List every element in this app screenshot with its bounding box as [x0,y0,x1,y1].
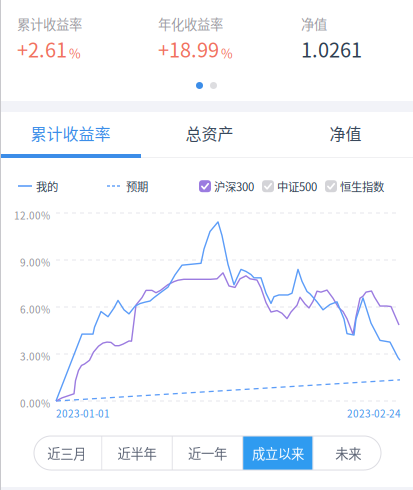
staticText: 累计收益率 [17,14,82,33]
staticText: 2023-02-24 [347,406,401,420]
staticText: 6.00% [20,302,50,316]
staticText: 累计收益率 [30,121,110,145]
button[interactable]: 成立以来 [243,436,313,470]
staticText: 成立以来 [252,443,304,463]
staticText: 预期 [126,178,148,194]
staticText: 3.00% [20,349,50,363]
staticText: 总资产 [185,121,233,145]
button[interactable]: 中证500 [262,178,317,194]
staticText: 沪深300 [214,178,254,194]
staticText: 净值 [329,121,361,145]
staticText: % [69,44,81,62]
button[interactable]: 近半年 [102,436,172,470]
staticText: 近半年 [118,443,157,463]
button[interactable]: 恒生指数 [325,178,384,194]
button[interactable]: 近三月 [32,436,101,470]
button[interactable]: 净值 [278,112,413,154]
button[interactable]: 累计收益率 [0,112,141,154]
button[interactable]: 未来 [314,436,383,470]
staticText: 12.00% [14,208,50,222]
staticText: +2.61 [17,34,67,63]
staticText: 我的 [36,178,58,194]
staticText: 近一年 [188,443,227,463]
button[interactable]: 近一年 [173,436,242,470]
staticText: 9.00% [20,255,50,269]
staticText: +18.99 [158,34,219,63]
staticText: 中证500 [277,178,317,194]
staticText: 恒生指数 [340,178,384,194]
staticText: 1.0261 [301,34,362,63]
staticText: 2023-01-01 [56,406,110,420]
staticText: 净值 [301,14,327,33]
staticText: 近三月 [47,443,86,463]
staticText: 0.00% [20,396,50,410]
button[interactable]: 总资产 [141,112,278,154]
staticText: 未来 [335,443,361,463]
staticText: % [221,44,233,62]
staticText: 年化收益率 [158,14,223,33]
button[interactable]: 沪深300 [199,178,254,194]
